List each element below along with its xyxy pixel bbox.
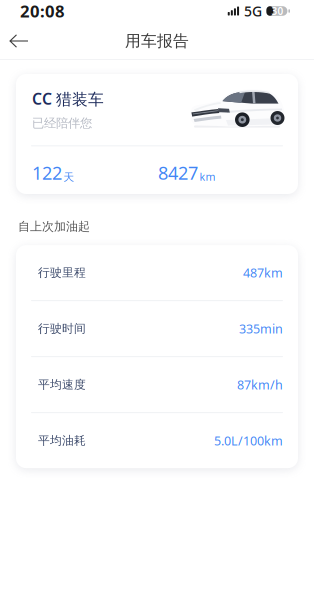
staticText: 天 <box>63 170 74 184</box>
staticText: 已经陪伴您 <box>32 115 92 131</box>
staticText: 122 <box>32 160 62 185</box>
button[interactable]: 行驶时间 <box>16 301 298 356</box>
staticText: 487km <box>243 264 283 281</box>
staticText: 335min <box>239 320 283 337</box>
staticText: 30 <box>271 4 283 18</box>
staticText: CC 猎装车 <box>32 88 104 109</box>
staticText: 87km/h <box>237 376 283 393</box>
staticText: km <box>199 169 215 184</box>
staticText: 20:08 <box>20 0 65 22</box>
staticText: 8427 <box>158 160 198 185</box>
staticText: 用车报告 <box>125 31 189 51</box>
staticText: 平均油耗 <box>38 433 86 448</box>
button[interactable]: Back <box>0 26 38 56</box>
staticText: 5G <box>244 1 262 21</box>
staticText: 行驶时间 <box>38 321 86 336</box>
staticText: 行驶里程 <box>38 265 86 280</box>
button[interactable]: 平均速度 <box>16 357 298 412</box>
staticText: 5.0L/100km <box>214 432 283 449</box>
staticText: 自上次加油起 <box>18 219 90 234</box>
button[interactable]: 行驶里程 <box>16 245 298 300</box>
staticText: 平均速度 <box>38 377 86 392</box>
button[interactable]: 平均油耗 <box>16 413 298 468</box>
